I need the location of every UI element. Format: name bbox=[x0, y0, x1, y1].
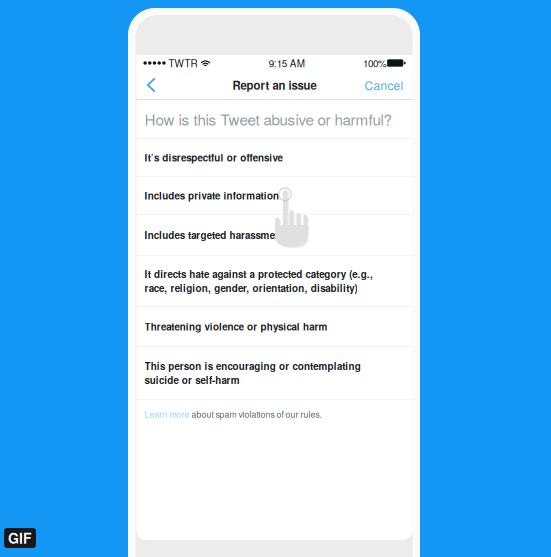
button[interactable]: Learn more bbox=[144, 408, 189, 420]
staticText: It directs hate against a protected cate… bbox=[144, 267, 373, 281]
staticText: about spam violations of our rules. bbox=[189, 408, 321, 420]
button[interactable]: Includes targeted harassment bbox=[136, 215, 412, 255]
staticText: This person is encouraging or contemplat… bbox=[144, 359, 361, 373]
staticText: Includes targeted harassment bbox=[144, 228, 284, 242]
staticText: Threatening violence or physical harm bbox=[144, 319, 328, 333]
button[interactable]: It’s disrespectful or offensive bbox=[136, 139, 412, 176]
staticText: Includes private information bbox=[144, 188, 279, 202]
staticText: 9:15 AM bbox=[269, 56, 305, 70]
staticText: How is this Tweet abusive or harmful? bbox=[144, 108, 391, 130]
button[interactable]: It directs hate against a protected cate… bbox=[136, 256, 412, 306]
staticText: race, religion, gender, orientation, dis… bbox=[144, 281, 357, 295]
button[interactable]: Cancel bbox=[357, 71, 412, 99]
staticText: GIF bbox=[8, 528, 32, 548]
staticText: TWTR bbox=[165, 56, 200, 70]
staticText: 100% bbox=[363, 56, 387, 70]
staticText: Report an issue bbox=[232, 77, 316, 93]
staticText: Learn more bbox=[144, 408, 189, 420]
button[interactable]: This person is encouraging or contemplat… bbox=[136, 347, 412, 399]
button[interactable]: Threatening violence or physical harm bbox=[136, 307, 412, 346]
staticText: It’s disrespectful or offensive bbox=[144, 150, 283, 164]
button[interactable]: Includes private information bbox=[136, 177, 412, 214]
button[interactable]: Back bbox=[136, 71, 166, 99]
staticText: suicide or self-harm bbox=[144, 373, 240, 387]
staticText: Cancel bbox=[364, 76, 403, 93]
